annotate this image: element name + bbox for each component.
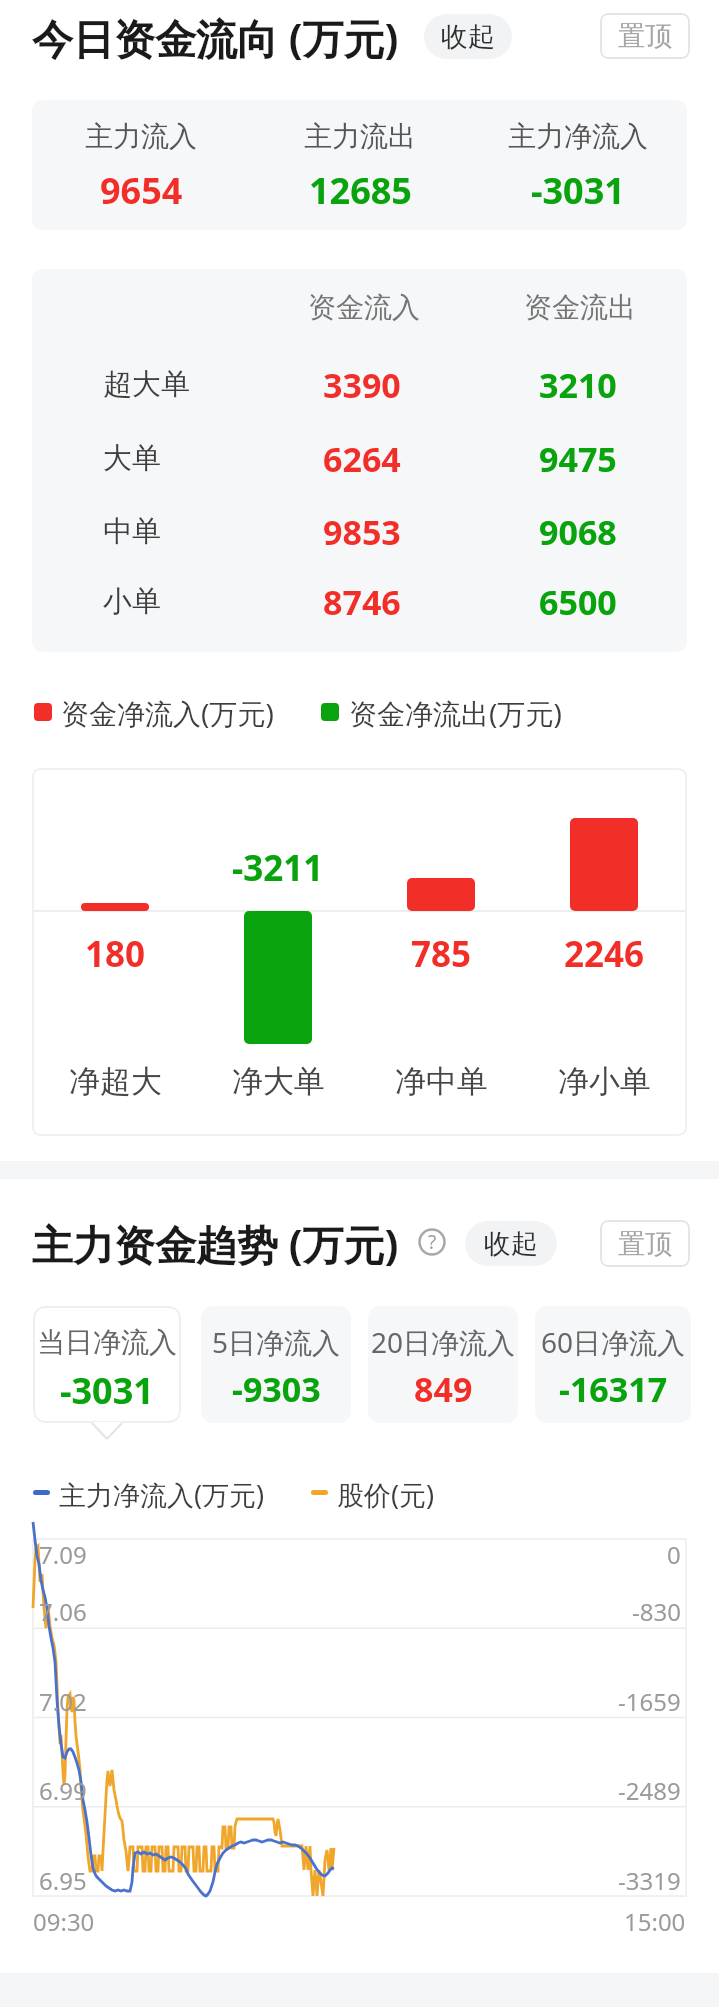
staticText: 9654 xyxy=(100,166,183,210)
staticText: 主力流出 xyxy=(304,119,416,154)
staticText: 09:30 xyxy=(33,1905,95,1938)
staticText: 主力净流入(万元) xyxy=(59,1476,265,1513)
staticText: 5日净流入 xyxy=(212,1323,341,1361)
staticText: -2489 xyxy=(618,1774,681,1807)
staticText: 主力资金趋势 (万元) xyxy=(32,1216,399,1272)
staticText: 7.02 xyxy=(39,1685,87,1718)
staticText: 0 xyxy=(667,1538,681,1571)
staticText: 中单 xyxy=(103,513,161,550)
staticText: 净小单 xyxy=(558,1062,651,1101)
button[interactable] xyxy=(33,1306,181,1423)
staticText: 置顶 xyxy=(618,19,672,53)
button[interactable] xyxy=(535,1306,691,1423)
staticText: -3031 xyxy=(60,1366,154,1410)
staticText: 小单 xyxy=(103,583,161,620)
staticText: -3031 xyxy=(531,166,625,210)
staticText: 7.09 xyxy=(39,1538,87,1571)
staticText: 12685 xyxy=(309,166,412,210)
staticText: 6.95 xyxy=(39,1864,87,1897)
staticText: 净超大 xyxy=(69,1062,162,1101)
staticText: 收起 xyxy=(441,20,495,54)
staticText: 9853 xyxy=(323,509,401,553)
button[interactable] xyxy=(201,1306,351,1423)
staticText: 净中单 xyxy=(395,1062,488,1101)
button[interactable]: ? xyxy=(418,1228,446,1256)
staticText: 净大单 xyxy=(232,1062,325,1101)
button[interactable]: 收起 xyxy=(465,1221,557,1266)
staticText: 大单 xyxy=(103,440,161,477)
staticText: 7.06 xyxy=(39,1595,87,1628)
staticText: 超大单 xyxy=(103,366,190,403)
staticText: 资金净流出(万元) xyxy=(349,694,562,732)
staticText: 今日资金流向 (万元) xyxy=(32,10,399,66)
button[interactable]: 收起 xyxy=(424,14,512,59)
button[interactable] xyxy=(368,1306,518,1423)
staticText: ? xyxy=(428,1229,437,1255)
staticText: 主力流入 xyxy=(85,119,197,154)
staticText: 6500 xyxy=(539,579,617,623)
staticText: -3211 xyxy=(232,844,324,888)
button[interactable]: 置顶 xyxy=(600,1220,690,1267)
staticText: 当日净流入 xyxy=(37,1325,177,1360)
staticText: -16317 xyxy=(559,1366,668,1410)
staticText: -9303 xyxy=(232,1366,321,1410)
button[interactable]: 置顶 xyxy=(600,13,690,59)
staticText: 785 xyxy=(411,930,472,974)
staticText: 资金流出 xyxy=(524,290,636,325)
staticText: 收起 xyxy=(484,1227,538,1261)
staticText: 3390 xyxy=(323,362,401,406)
staticText: 3210 xyxy=(539,362,617,406)
staticText: 主力净流入 xyxy=(508,119,648,154)
staticText: 15:00 xyxy=(624,1905,686,1938)
staticText: -830 xyxy=(632,1595,681,1628)
staticText: 置顶 xyxy=(618,1227,672,1261)
staticText: 资金流入 xyxy=(308,290,420,325)
staticText: -3319 xyxy=(618,1864,681,1897)
staticText: 6264 xyxy=(323,436,401,480)
staticText: 6.99 xyxy=(39,1774,87,1807)
staticText: 60日净流入 xyxy=(541,1323,686,1361)
staticText: 股价(元) xyxy=(337,1476,435,1513)
staticText: 2246 xyxy=(564,930,645,974)
staticText: 9475 xyxy=(539,436,617,480)
staticText: 9068 xyxy=(539,509,617,553)
staticText: 180 xyxy=(85,930,146,974)
staticText: 资金净流入(万元) xyxy=(61,694,274,732)
staticText: 8746 xyxy=(323,579,401,623)
staticText: 20日净流入 xyxy=(371,1323,516,1361)
staticText: 849 xyxy=(414,1366,473,1410)
staticText: -1659 xyxy=(618,1685,681,1718)
